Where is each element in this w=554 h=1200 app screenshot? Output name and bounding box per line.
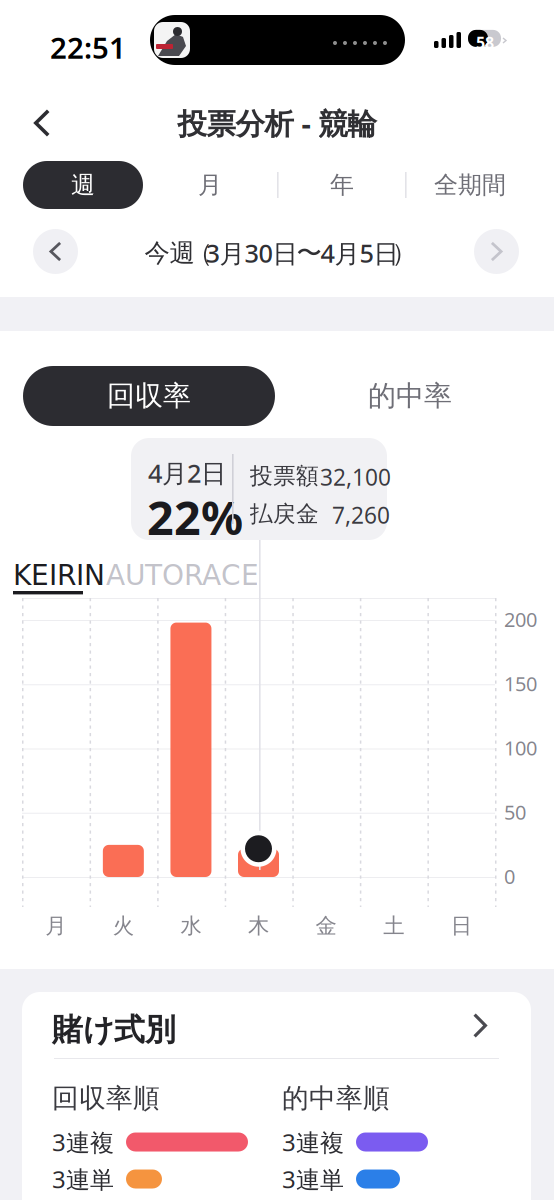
staticText: 3月30日: [205, 236, 297, 270]
button[interactable]: 週: [23, 161, 143, 209]
button[interactable]: Previous period: [33, 229, 78, 274]
staticText: 3連複: [52, 1126, 114, 1158]
button[interactable]: Next period: [474, 229, 519, 274]
staticText: 0: [504, 863, 515, 890]
staticText: 回収率順: [52, 1082, 160, 1115]
staticText: 22:51: [50, 28, 126, 67]
staticText: 回収率: [107, 379, 191, 413]
staticText: 58: [476, 32, 494, 53]
staticText: 的中率順: [282, 1082, 390, 1115]
staticText: 200: [504, 606, 537, 633]
staticText: 3連複: [282, 1126, 344, 1158]
staticText: 月: [45, 913, 66, 939]
button[interactable]: 回収率: [23, 366, 275, 426]
staticText: （: [187, 237, 212, 268]
button[interactable]: 月: [155, 161, 265, 209]
staticText: 日: [451, 913, 472, 939]
staticText: 〜: [296, 237, 321, 268]
staticText: 4月2日: [148, 456, 226, 490]
staticText: 年: [330, 170, 354, 200]
staticText: 100: [504, 734, 537, 761]
staticText: 月: [198, 170, 222, 200]
button[interactable]: 賭け式別: [22, 992, 531, 1058]
staticText: 7,260: [332, 500, 390, 530]
staticText: 木: [248, 913, 269, 939]
staticText: 3連単: [52, 1163, 114, 1195]
staticText: AUTORACE: [106, 559, 259, 592]
staticText: 金: [316, 913, 337, 939]
staticText: 火: [113, 913, 134, 939]
button[interactable]: 的中率: [330, 366, 490, 426]
staticText: 22%: [147, 486, 243, 548]
staticText: 50: [504, 799, 526, 825]
staticText: 的中率: [368, 379, 452, 413]
staticText: 賭け式別: [52, 1011, 176, 1049]
staticText: 水: [180, 913, 201, 939]
staticText: 3連単: [282, 1163, 344, 1195]
button[interactable]: 年: [287, 161, 397, 209]
staticText: 32,100: [320, 462, 391, 492]
staticText: 4月5日: [320, 236, 398, 270]
staticText: 150: [504, 670, 537, 697]
staticText: KEIRIN: [13, 559, 105, 592]
staticText: 払戻金: [250, 500, 319, 528]
staticText: ）: [391, 237, 416, 268]
staticText: 土: [383, 913, 404, 939]
button[interactable]: AUTORACE: [106, 559, 259, 592]
staticText: 全期間: [434, 170, 506, 200]
button[interactable]: Back: [15, 96, 69, 150]
staticText: 週: [71, 170, 95, 200]
button[interactable]: 全期間: [410, 161, 530, 209]
staticText: 今週: [144, 237, 194, 268]
staticText: 投票分析 - 競輪: [177, 103, 376, 142]
button[interactable]: KEIRIN: [24, 559, 94, 595]
staticText: 投票額: [250, 462, 319, 490]
